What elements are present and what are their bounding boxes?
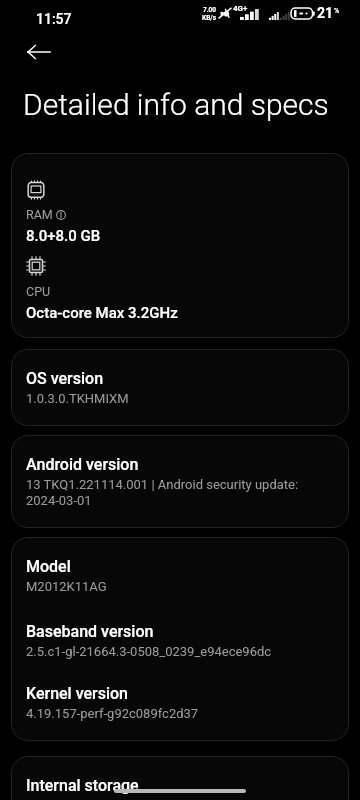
button[interactable]: Android version [11, 435, 349, 528]
staticText: Detailed info and specs [23, 87, 329, 122]
button[interactable]: Internal storage [11, 756, 349, 800]
staticText: 1.0.3.0.TKHMIXM [26, 391, 129, 406]
staticText: Model [26, 557, 71, 576]
staticText: 8.0+8.0 GB [26, 227, 101, 245]
staticText: 4.19.157-perf-g92c089fc2d37 [26, 706, 199, 721]
staticText: OS version [26, 369, 104, 388]
staticText: 2.5.c1-gl-21664.3-0508_0239_e94ece96dc [26, 644, 272, 659]
staticText: Octa-core Max 3.2GHz [26, 304, 178, 322]
staticText: % [334, 7, 340, 15]
button[interactable]: RAM [11, 153, 349, 338]
staticText: Android version [26, 455, 139, 474]
staticText: CPU [26, 284, 51, 299]
button[interactable]: Model [11, 537, 349, 741]
button[interactable]: Back [19, 33, 57, 71]
staticText: M2012K11AG [26, 579, 107, 594]
staticText: Baseband version [26, 622, 154, 641]
button[interactable]: OS version [11, 349, 349, 426]
staticText: 13 TKQ1.221114.001 | Android security up… [26, 477, 299, 508]
staticText: Internal storage [26, 776, 139, 795]
staticText: 11:57 [36, 11, 72, 27]
staticText: 7.00 [203, 6, 217, 14]
staticText: 4G+ [233, 4, 248, 13]
staticText: KB/s [202, 14, 217, 22]
staticText: RAM [26, 207, 53, 222]
staticText: Kernel version [26, 684, 129, 703]
staticText: 21 [317, 5, 334, 21]
